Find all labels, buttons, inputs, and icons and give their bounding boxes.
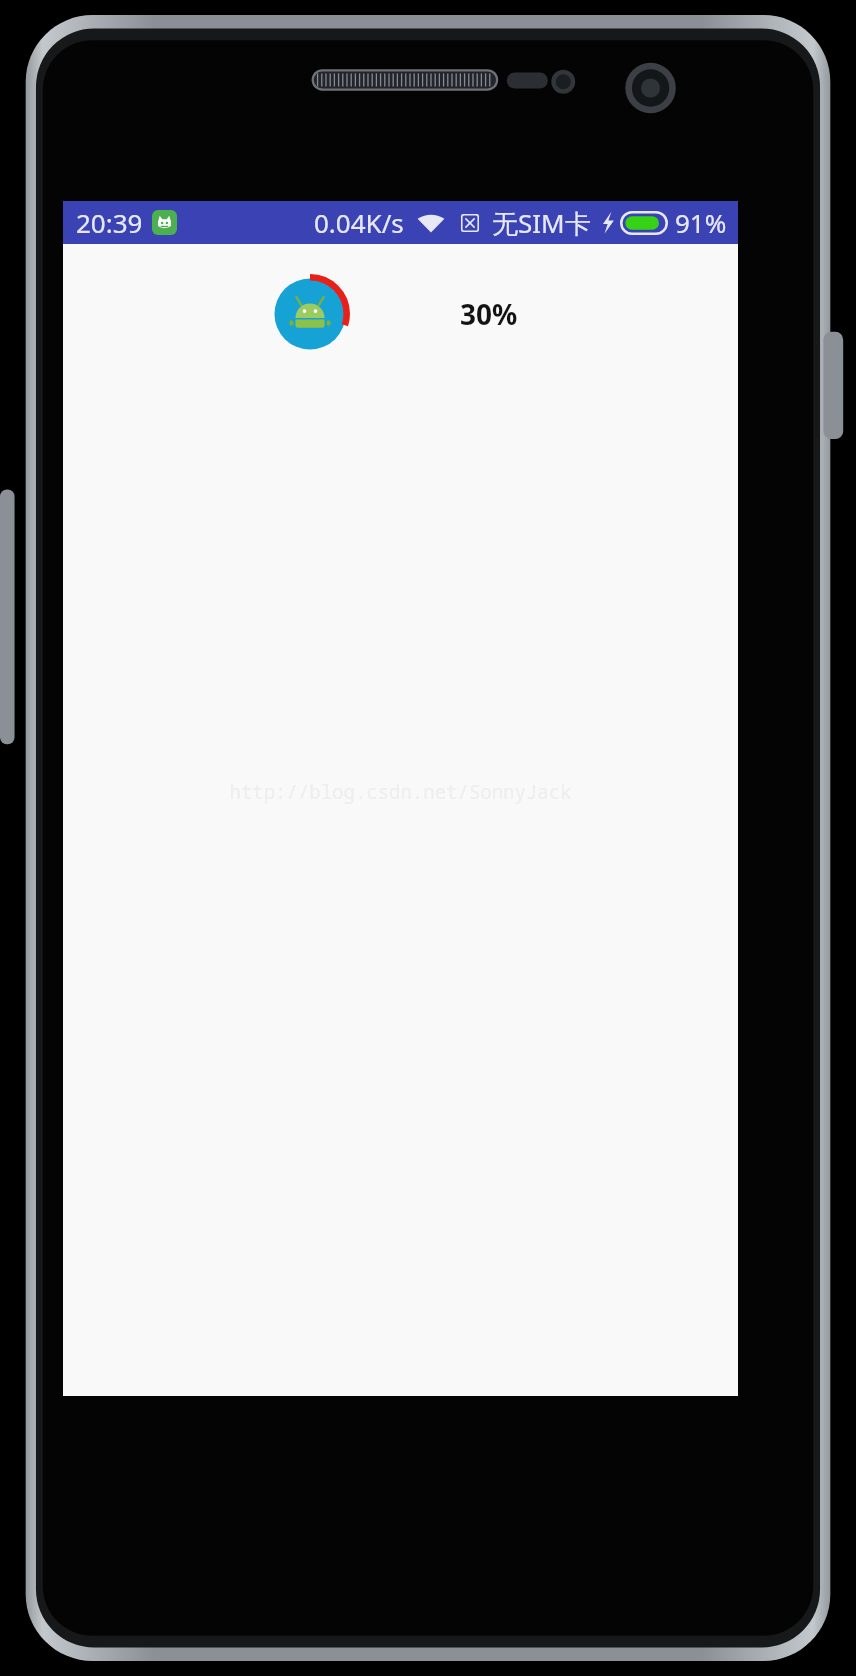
staticText: 91% — [675, 205, 727, 240]
staticText: 30% — [460, 295, 518, 333]
staticText: 20:39 — [76, 205, 143, 240]
staticText: 0.04K/s — [314, 205, 404, 240]
staticText: 无SIM卡 — [492, 205, 591, 241]
staticText: http://blog.csdn.net/SonnyJack — [229, 779, 572, 805]
button[interactable]: Download progress 30 percent — [270, 274, 350, 354]
